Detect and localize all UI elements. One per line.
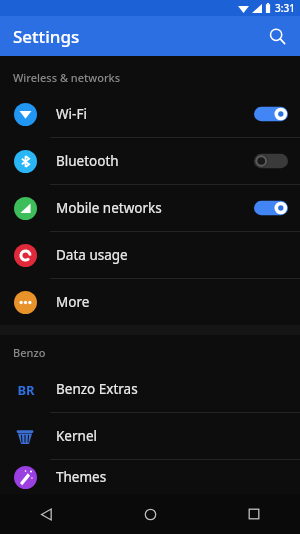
button[interactable]: Search: [260, 19, 294, 53]
button[interactable]: Bluetooth: [0, 138, 300, 184]
button[interactable]: [254, 104, 288, 124]
staticText: BR: [17, 381, 35, 399]
button[interactable]: Data usage: [0, 232, 300, 278]
staticText: Themes: [56, 468, 288, 486]
staticText: Mobile networks: [56, 199, 254, 217]
staticText: Wi-Fi: [56, 105, 254, 123]
button[interactable]: Wi-Fi: [0, 91, 300, 137]
button[interactable]: [254, 151, 288, 171]
staticText: Benzo: [13, 345, 46, 360]
staticText: Kernel: [56, 427, 288, 445]
button[interactable]: BR: [0, 366, 300, 412]
button[interactable]: Themes: [0, 460, 300, 494]
button[interactable]: Back: [26, 494, 66, 534]
staticText: Wireless & networks: [13, 70, 121, 85]
button[interactable]: Recents: [234, 494, 274, 534]
staticText: Benzo Extras: [56, 380, 288, 398]
staticText: Settings: [13, 25, 80, 48]
staticText: Data usage: [56, 246, 288, 264]
staticText: Bluetooth: [56, 152, 254, 170]
staticText: More: [56, 293, 288, 311]
button[interactable]: More: [0, 279, 300, 325]
button[interactable]: Mobile networks: [0, 185, 300, 231]
staticText: 3:31: [275, 1, 295, 15]
button[interactable]: Home: [130, 494, 170, 534]
button[interactable]: Kernel: [0, 413, 300, 459]
button[interactable]: [254, 198, 288, 218]
